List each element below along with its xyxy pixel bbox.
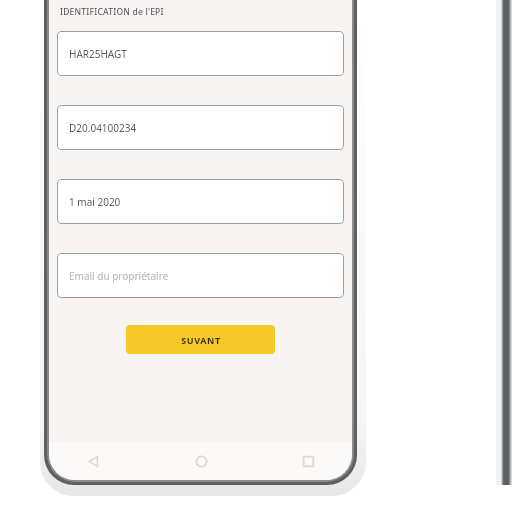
staticText: Email du propriétaire xyxy=(69,269,169,283)
button[interactable]: 1 mai 2020 xyxy=(57,179,344,224)
staticText: IDENTIFICATION de l'EPI xyxy=(60,6,164,18)
staticText: 1 mai 2020 xyxy=(69,195,121,209)
button[interactable]: Email du propriétaire xyxy=(57,253,344,298)
button[interactable]: Back xyxy=(71,444,115,478)
button[interactable]: HAR25HAGT xyxy=(57,31,344,76)
button[interactable]: Home xyxy=(179,444,223,478)
staticText: HAR25HAGT xyxy=(69,47,127,61)
button[interactable]: Recents xyxy=(286,444,330,478)
button[interactable]: SUVANT xyxy=(126,325,275,354)
staticText: D20.04100234 xyxy=(69,121,137,135)
button[interactable]: D20.04100234 xyxy=(57,105,344,150)
staticText: SUVANT xyxy=(181,334,221,346)
